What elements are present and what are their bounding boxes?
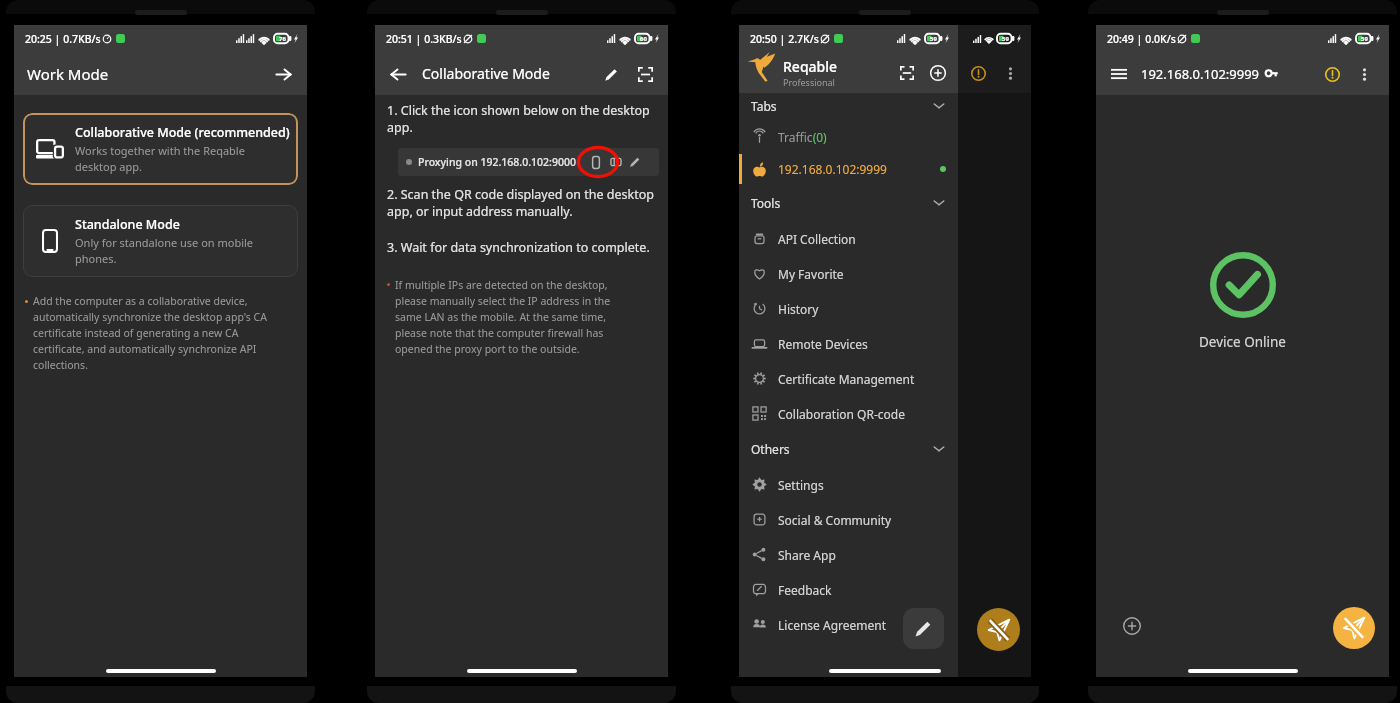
staticText: 1. Click the icon shown below on the des… [387,102,654,136]
staticText: Professional [783,76,835,88]
staticText: API Collection [778,231,856,247]
button[interactable]: Edit [598,61,624,87]
button[interactable]: API Collection [739,221,958,256]
staticText: Reqable [783,57,838,76]
staticText: Certificate Management [778,371,915,387]
button[interactable]: 192.168.0.102:9999 [739,154,958,184]
button[interactable]: Collaboration QR-code [739,396,958,431]
button[interactable]: Back [385,61,411,87]
button[interactable]: Certificate Management [739,361,958,396]
button[interactable]: Traffic(0) [739,119,958,154]
staticText: Device Online [1199,333,1286,351]
staticText: 20:25 | 0.7KB/s [25,32,101,46]
button[interactable]: Standalone Mode [23,205,298,277]
staticText: Only for standalone use on mobile phones… [75,235,254,266]
staticText: 2. Scan the QR code displayed on the des… [387,186,654,220]
button[interactable]: History [739,291,958,326]
staticText: Tools [751,195,781,211]
staticText: 20:50 | 2.7K/s [750,32,819,46]
staticText: Collaborative Mode [422,64,550,83]
button[interactable]: Scan QR code [895,61,919,85]
button[interactable]: Social & Community [739,502,958,537]
button[interactable]: Next [271,62,295,86]
staticText: 59 [1002,35,1009,43]
button[interactable]: Edit [903,608,944,649]
button[interactable]: Scan QR code [632,61,658,87]
button[interactable]: Open menu [1106,61,1132,87]
staticText: Work Mode [27,64,109,84]
staticText: Social & Community [778,512,892,528]
staticText: Tabs [751,98,777,114]
staticText: My Favorite [778,266,844,282]
staticText: History [778,301,819,317]
staticText: Traffic(0) [778,129,827,145]
button[interactable]: Collaborative Mode (recommended) [23,113,298,185]
staticText: 59 [1361,35,1368,43]
staticText: 20:51 | 0.3KB/s [386,32,462,46]
button[interactable]: More options [1352,62,1376,86]
staticText: 59 [930,35,937,43]
staticText: 60 [640,35,647,43]
staticText: Add the computer as a collaborative devi… [33,294,288,372]
button[interactable]: Feedback [739,572,958,607]
staticText: 20:49 | 0.0K/s [1107,32,1176,46]
staticText: If multiple IPs are detected on the desk… [395,278,630,356]
button[interactable]: My Favorite [739,256,958,291]
staticText: License Agreement [778,617,887,633]
staticText: Others [751,441,790,457]
staticText: Collaboration QR-code [778,406,905,422]
staticText: Works together with the Reqable desktop … [75,143,245,174]
button[interactable]: More options [998,61,1022,85]
button[interactable]: Add [926,61,950,85]
button[interactable]: License Agreement [739,607,958,642]
staticText: Proxying on 192.168.0.102:9000 [418,155,576,169]
button[interactable]: Start capture [977,608,1020,651]
button[interactable]: Add [1120,614,1144,638]
button[interactable]: Warning [1320,62,1344,86]
staticText: 192.168.0.102:9999 [778,161,887,177]
staticText: Remote Devices [778,336,868,352]
staticText: Settings [778,477,824,493]
staticText: Share App [778,547,836,563]
button[interactable]: Settings [739,467,958,502]
button[interactable]: Remote Devices [739,326,958,361]
button[interactable]: Share App [739,537,958,572]
staticText: 192.168.0.102:9999 [1141,65,1260,83]
button[interactable]: Warning [966,61,990,85]
staticText: Collaborative Mode (recommended) [75,124,290,141]
staticText: 3. Wait for data synchronization to comp… [387,239,650,256]
staticText: Standalone Mode [75,216,180,233]
button[interactable]: Stop capture [1333,607,1375,649]
staticText: Feedback [778,582,832,598]
staticText: 76 [279,35,286,43]
